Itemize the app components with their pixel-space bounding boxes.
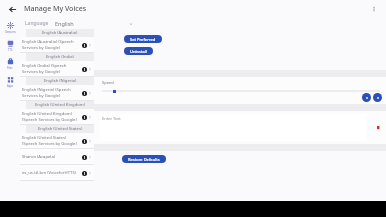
button[interactable]: English (United Kingdom) (26, 101, 94, 109)
staticText: English (55, 20, 74, 27)
staticText: English (United States) (Speech Services… (22, 135, 79, 146)
button[interactable]: English (India) (Speech Services by Goog… (20, 61, 94, 76)
button[interactable]: English (United Kingdom) (Speech Service… (20, 109, 94, 124)
staticText: Language (25, 20, 49, 27)
button[interactable]: English (Australia) (26, 29, 94, 37)
button[interactable]: Apps (0, 75, 20, 88)
staticText: Restore Defaults (128, 157, 160, 162)
button[interactable]: English (United States) (26, 125, 94, 133)
staticText: TTS (8, 48, 13, 52)
button[interactable]: Play (373, 93, 382, 102)
button[interactable]: Info (81, 42, 87, 48)
button[interactable]: English (55, 20, 133, 27)
button[interactable]: Info (81, 66, 87, 72)
button[interactable]: TTS (0, 39, 20, 52)
staticText: Uninstall (130, 49, 147, 54)
staticText: Files (7, 66, 13, 70)
staticText: English (Australia) (Speech Services by … (22, 39, 79, 50)
staticText: English (United Kingdom) (35, 102, 85, 108)
staticText: Apps (7, 84, 14, 88)
button[interactable]: English (Nigeria) (Speech Services by Go… (20, 85, 94, 100)
button[interactable]: Restore Defaults (122, 155, 166, 163)
button[interactable]: Back (6, 3, 18, 15)
staticText: English (Nigeria) (44, 78, 77, 84)
staticText: English (India) (46, 54, 74, 60)
staticText: Manage My Voices (24, 4, 87, 14)
button[interactable]: More options (368, 3, 380, 15)
button[interactable]: Enter Text (100, 114, 366, 141)
button[interactable]: Info (81, 138, 87, 144)
button[interactable]: Previous (362, 93, 371, 102)
button[interactable]: Gestures (0, 21, 20, 34)
button[interactable]: es_us-ttl-bm (VoiceforHTTS) (20, 165, 94, 180)
button[interactable]: English (United States) (Speech Services… (20, 133, 94, 148)
button[interactable]: English (Australia) (Speech Services by … (20, 37, 94, 52)
button[interactable]: Files (0, 57, 20, 70)
button[interactable]: Sharon (Acapela) (20, 149, 94, 164)
staticText: Sharon (Acapela) (22, 154, 79, 160)
button[interactable]: Info (81, 154, 87, 160)
staticText: Speed (102, 80, 114, 85)
button[interactable]: Uninstall (124, 47, 153, 55)
staticText: English (United States) (38, 126, 83, 132)
staticText: Enter Text (102, 116, 121, 121)
button[interactable]: Info (81, 90, 87, 96)
staticText: English (Australia) (42, 30, 78, 36)
staticText: es_us-ttl-bm (VoiceforHTTS) (22, 170, 79, 176)
button[interactable]: Info (81, 170, 87, 176)
staticText: Set Preferred (130, 37, 156, 42)
button[interactable]: Set Preferred (124, 35, 162, 43)
staticText: English (Nigeria) (Speech Services by Go… (22, 87, 79, 98)
button[interactable]: English (Nigeria) (26, 77, 94, 85)
staticText: Gestures (5, 30, 16, 34)
staticText: English (United Kingdom) (Speech Service… (22, 111, 79, 122)
button[interactable]: English (India) (26, 53, 94, 61)
button[interactable]: Info (81, 114, 87, 120)
staticText: English (India) (Speech Services by Goog… (22, 63, 79, 74)
